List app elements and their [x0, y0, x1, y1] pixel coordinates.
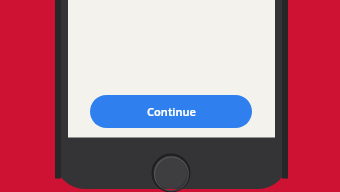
button[interactable]: Continue [90, 95, 252, 128]
staticText: Continue [147, 104, 196, 119]
